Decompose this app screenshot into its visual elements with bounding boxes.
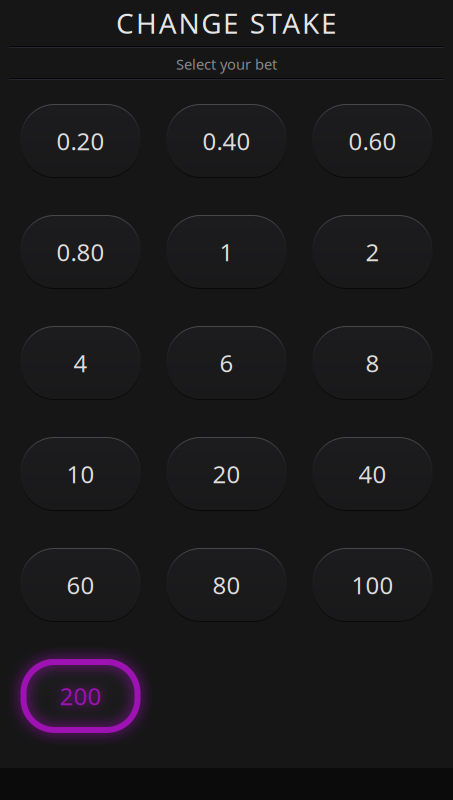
- button[interactable]: 200: [20, 659, 140, 733]
- staticText: 2: [365, 236, 379, 268]
- button[interactable]: 8: [312, 326, 432, 400]
- button[interactable]: 20: [166, 437, 286, 511]
- staticText: 0.40: [202, 125, 250, 157]
- staticText: 40: [358, 458, 386, 490]
- staticText: 0.20: [56, 125, 104, 157]
- button[interactable]: 6: [166, 326, 286, 400]
- button[interactable]: 1: [166, 215, 286, 289]
- button[interactable]: 80: [166, 548, 286, 622]
- staticText: 60: [66, 569, 94, 601]
- staticText: 0.80: [56, 236, 104, 268]
- button[interactable]: 0.60: [312, 104, 432, 178]
- button[interactable]: 40: [312, 437, 432, 511]
- staticText: 1: [219, 236, 233, 268]
- button[interactable]: 60: [20, 548, 140, 622]
- button[interactable]: 4: [20, 326, 140, 400]
- staticText: 20: [212, 458, 240, 490]
- button[interactable]: 10: [20, 437, 140, 511]
- staticText: 0.60: [348, 125, 396, 157]
- button[interactable]: 0.80: [20, 215, 140, 289]
- staticText: 200: [59, 680, 101, 712]
- button[interactable]: 0.40: [166, 104, 286, 178]
- staticText: Select your bet: [176, 54, 277, 74]
- staticText: 100: [351, 569, 393, 601]
- staticText: 4: [73, 347, 87, 379]
- button[interactable]: 2: [312, 215, 432, 289]
- staticText: 8: [365, 347, 379, 379]
- staticText: 6: [219, 347, 233, 379]
- staticText: CHANGE STAKE: [116, 4, 337, 42]
- button[interactable]: 0.20: [20, 104, 140, 178]
- button[interactable]: 100: [312, 548, 432, 622]
- staticText: 10: [66, 458, 94, 490]
- staticText: 80: [212, 569, 240, 601]
